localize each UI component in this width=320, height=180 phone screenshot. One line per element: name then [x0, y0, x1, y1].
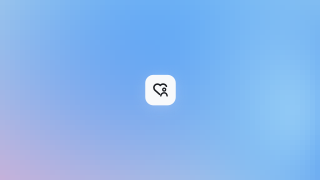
button[interactable]: Open app — [145, 75, 176, 105]
